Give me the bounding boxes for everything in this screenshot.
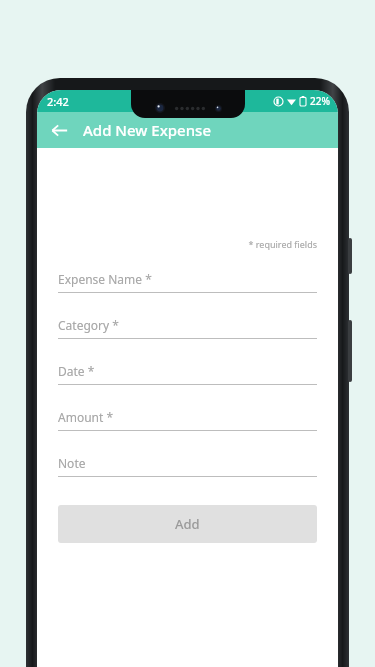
staticText: Amount * [58,409,114,425]
staticText: 2:42 [47,94,69,109]
staticText: 22% [310,94,330,108]
staticText: Expense Name * [58,271,152,287]
button[interactable]: Back [41,112,77,148]
staticText: Date * [58,363,95,379]
staticText: Note [58,455,86,471]
button[interactable]: Amount * [58,409,317,431]
staticText: Category * [58,317,119,333]
button[interactable]: Note [58,455,317,477]
staticText: Add New Expense [83,120,211,140]
button[interactable]: Add [58,505,317,543]
button[interactable]: Expense Name * [58,271,317,293]
button[interactable]: Category * [58,317,317,339]
staticText: Add [175,515,200,533]
staticText: * required fields [58,238,317,250]
button[interactable]: Date * [58,363,317,385]
